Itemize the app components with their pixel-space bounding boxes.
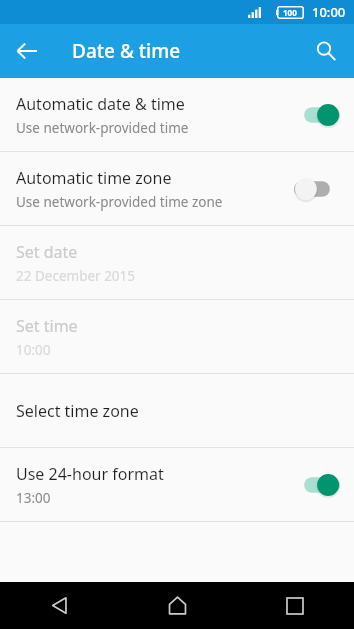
staticText: Use 24-hour format: [16, 463, 164, 485]
button[interactable]: Select time zone: [0, 374, 354, 447]
button[interactable]: Use 24-hour format: [0, 448, 354, 521]
button[interactable]: Automatic time zone: [0, 152, 354, 225]
staticText: 100: [283, 7, 297, 18]
staticText: Select time zone: [16, 400, 139, 422]
button[interactable]: Toggle off: [294, 175, 340, 203]
staticText: 13:00: [16, 489, 51, 507]
staticText: 10:00: [16, 341, 51, 359]
button[interactable]: Set time: [0, 300, 354, 373]
staticText: 22 December 2015: [16, 267, 136, 285]
staticText: Automatic date & time: [16, 93, 185, 115]
button[interactable]: Recent apps: [236, 582, 354, 629]
button[interactable]: Toggle on: [294, 471, 340, 499]
button[interactable]: Search: [304, 29, 348, 73]
staticText: Use network-provided time: [16, 119, 189, 137]
button[interactable]: Set date: [0, 226, 354, 299]
button[interactable]: Back: [5, 29, 49, 73]
staticText: 10:00: [312, 3, 346, 21]
staticText: Set time: [16, 315, 78, 337]
button[interactable]: Toggle on: [294, 101, 340, 129]
button[interactable]: Automatic date & time: [0, 78, 354, 151]
staticText: Date & time: [72, 38, 181, 64]
staticText: Set date: [16, 241, 78, 263]
staticText: Use network-provided time zone: [16, 193, 223, 211]
button[interactable]: Home: [118, 582, 236, 629]
staticText: Automatic time zone: [16, 167, 172, 189]
button[interactable]: Back: [0, 582, 118, 629]
